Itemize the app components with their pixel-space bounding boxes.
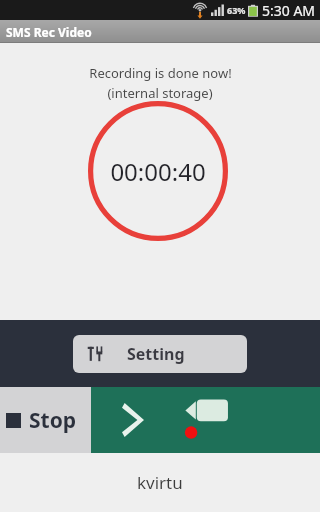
button[interactable]: Stop: [0, 387, 91, 453]
button[interactable]: Setting: [73, 335, 247, 373]
staticText: kvirtu: [137, 471, 183, 494]
button[interactable]: Record video: [174, 387, 250, 453]
staticText: 00:00:40: [110, 155, 206, 188]
staticText: Recording is done now!: [89, 64, 232, 82]
staticText: Setting: [127, 343, 185, 365]
staticText: 5:30 AM: [262, 1, 316, 20]
button[interactable]: Next: [91, 387, 174, 453]
staticText: Stop: [29, 406, 77, 435]
staticText: 63%: [227, 4, 246, 16]
staticText: SMS Rec Video: [6, 24, 92, 40]
staticText: (internal storage): [107, 84, 213, 102]
